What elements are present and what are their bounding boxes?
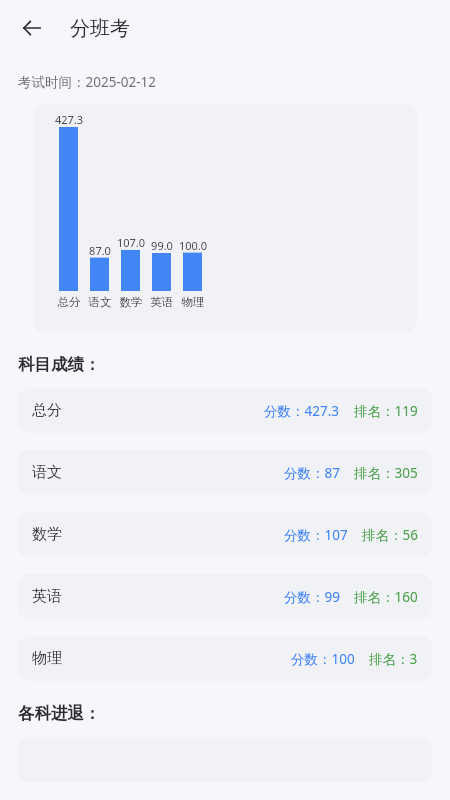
staticText: 分数：107 xyxy=(284,526,348,544)
staticText: 分数：99 xyxy=(284,588,340,606)
staticText: 考试时间：2025-02-12 xyxy=(18,73,156,91)
staticText: 排名：56 xyxy=(362,526,418,544)
staticText: 分班考 xyxy=(70,16,130,41)
staticText: 物理 xyxy=(32,649,62,668)
staticText: 排名：160 xyxy=(354,588,418,606)
staticText: 87.0 xyxy=(83,243,117,258)
staticText: 科目成绩： xyxy=(18,354,101,375)
staticText: 100.0 xyxy=(176,238,210,253)
staticText: 分数：100 xyxy=(291,650,355,668)
staticText: 各科进退： xyxy=(18,703,101,724)
staticText: 分数：87 xyxy=(284,464,340,482)
staticText: 语文 xyxy=(32,463,62,482)
staticText: 总分 xyxy=(32,401,62,420)
button[interactable]: 物理 xyxy=(18,636,432,681)
staticText: 排名：305 xyxy=(354,464,418,482)
staticText: 99.0 xyxy=(145,238,179,253)
staticText: 排名：119 xyxy=(354,402,418,420)
button[interactable]: 语文 xyxy=(18,450,432,495)
button[interactable]: 英语 xyxy=(18,574,432,619)
staticText: 总分 xyxy=(52,295,86,309)
button[interactable]: 总分 xyxy=(18,388,432,433)
staticText: 427.3 xyxy=(52,112,86,127)
staticText: 语文 xyxy=(83,295,117,309)
staticText: 英语 xyxy=(32,587,62,606)
staticText: 物理 xyxy=(176,295,210,309)
staticText: 排名：3 xyxy=(369,650,418,668)
button[interactable]: 数学 xyxy=(18,512,432,557)
button[interactable]: Back xyxy=(12,8,52,48)
staticText: 分数：427.3 xyxy=(264,402,340,420)
staticText: 英语 xyxy=(145,295,179,309)
staticText: 数学 xyxy=(114,295,148,309)
staticText: 107.0 xyxy=(114,235,148,250)
staticText: 数学 xyxy=(32,525,62,544)
